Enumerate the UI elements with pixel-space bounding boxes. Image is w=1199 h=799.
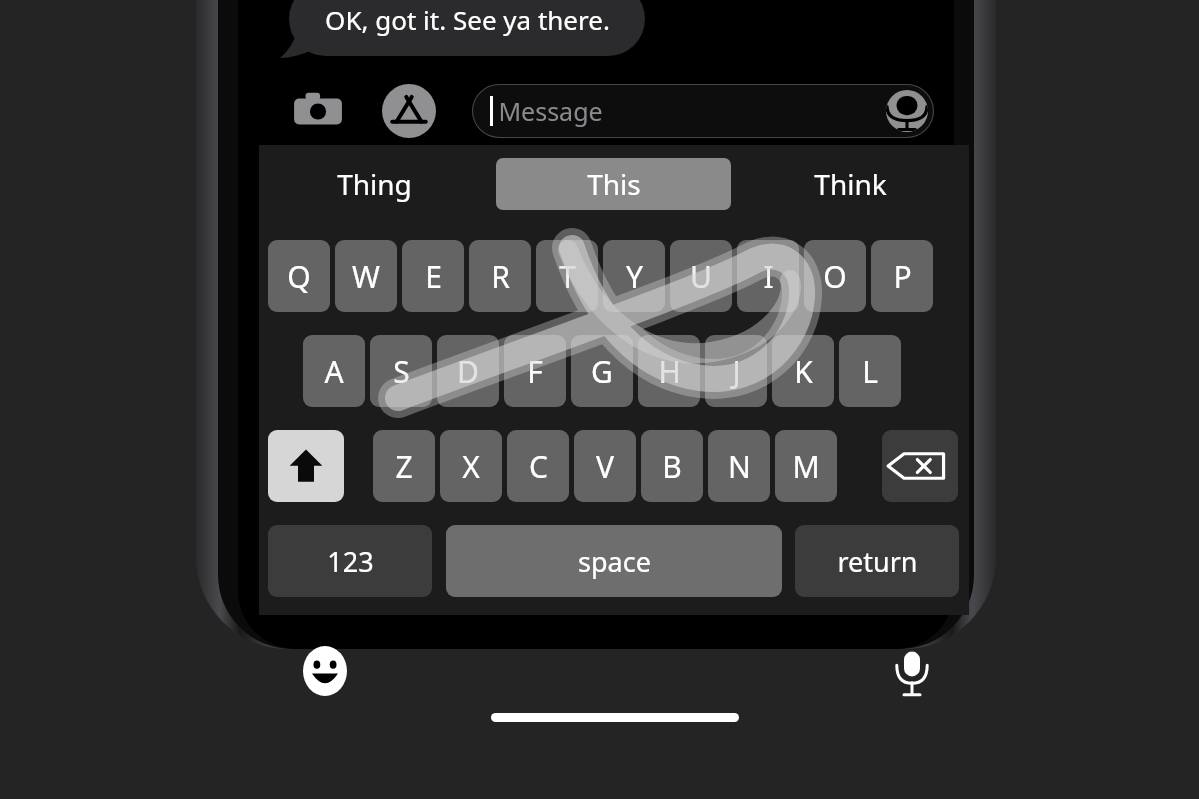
button[interactable]: S bbox=[370, 335, 432, 407]
button[interactable]: Delete bbox=[882, 430, 958, 502]
staticText: V bbox=[596, 446, 614, 487]
button[interactable]: I bbox=[737, 240, 799, 312]
button[interactable]: R bbox=[469, 240, 531, 312]
staticText: This bbox=[587, 165, 641, 203]
button[interactable]: F bbox=[504, 335, 566, 407]
staticText: OK, got it. See ya there. bbox=[325, 2, 610, 37]
button[interactable]: C bbox=[507, 430, 569, 502]
staticText: Thing bbox=[337, 165, 412, 203]
staticText: S bbox=[393, 351, 410, 392]
staticText: return bbox=[837, 543, 918, 580]
button[interactable]: Y bbox=[603, 240, 665, 312]
staticText: R bbox=[491, 256, 510, 297]
staticText: L bbox=[862, 351, 878, 392]
button[interactable]: X bbox=[440, 430, 502, 502]
button[interactable]: L bbox=[839, 335, 901, 407]
button[interactable]: App Store bbox=[382, 84, 436, 138]
staticText: F bbox=[527, 351, 543, 392]
button[interactable]: P bbox=[871, 240, 933, 312]
button[interactable]: J bbox=[705, 335, 767, 407]
button[interactable]: A bbox=[303, 335, 365, 407]
staticText: O bbox=[823, 256, 847, 297]
button[interactable]: This bbox=[496, 158, 731, 210]
staticText: D bbox=[457, 351, 479, 392]
button[interactable]: Dictate bbox=[886, 90, 928, 132]
button[interactable]: H bbox=[638, 335, 700, 407]
staticText: P bbox=[893, 256, 912, 297]
staticText: T bbox=[559, 256, 576, 297]
staticText: N bbox=[728, 446, 751, 487]
button[interactable]: Emoji bbox=[300, 646, 350, 696]
staticText: G bbox=[591, 351, 613, 392]
button[interactable]: Z bbox=[373, 430, 435, 502]
staticText: E bbox=[425, 256, 442, 297]
button[interactable]: O bbox=[804, 240, 866, 312]
button[interactable]: Camera bbox=[292, 84, 344, 136]
button[interactable]: T bbox=[536, 240, 598, 312]
staticText: 123 bbox=[327, 543, 374, 580]
staticText: U bbox=[690, 256, 712, 297]
button[interactable]: Message bbox=[472, 84, 934, 138]
button[interactable]: OK, got it. See ya there. bbox=[289, 0, 645, 56]
button[interactable]: D bbox=[437, 335, 499, 407]
staticText: A bbox=[324, 351, 344, 392]
button[interactable]: Q bbox=[268, 240, 330, 312]
button[interactable]: W bbox=[335, 240, 397, 312]
button[interactable]: Shift bbox=[268, 430, 344, 502]
staticText: W bbox=[352, 256, 380, 297]
button[interactable]: B bbox=[641, 430, 703, 502]
staticText: Y bbox=[626, 256, 643, 297]
button[interactable]: U bbox=[670, 240, 732, 312]
button[interactable]: Thing bbox=[290, 158, 458, 210]
button[interactable]: N bbox=[708, 430, 770, 502]
button[interactable]: K bbox=[772, 335, 834, 407]
staticText: space bbox=[578, 543, 651, 580]
staticText: Message bbox=[498, 94, 603, 128]
staticText: K bbox=[794, 351, 813, 392]
staticText: H bbox=[658, 351, 681, 392]
button[interactable]: G bbox=[571, 335, 633, 407]
staticText: X bbox=[462, 446, 480, 487]
staticText: I bbox=[763, 256, 774, 297]
staticText: C bbox=[529, 446, 548, 487]
staticText: B bbox=[662, 446, 682, 487]
button[interactable]: space bbox=[446, 525, 782, 597]
button[interactable]: Dictation bbox=[892, 644, 932, 698]
staticText: Z bbox=[395, 446, 413, 487]
button[interactable]: Think bbox=[766, 158, 934, 210]
staticText: Think bbox=[814, 165, 887, 203]
button[interactable]: V bbox=[574, 430, 636, 502]
button[interactable]: 123 bbox=[268, 525, 432, 597]
button[interactable]: E bbox=[402, 240, 464, 312]
button[interactable]: M bbox=[775, 430, 837, 502]
button[interactable]: return bbox=[795, 525, 959, 597]
staticText: Q bbox=[287, 256, 311, 297]
staticText: J bbox=[732, 351, 741, 392]
staticText: M bbox=[792, 446, 820, 487]
